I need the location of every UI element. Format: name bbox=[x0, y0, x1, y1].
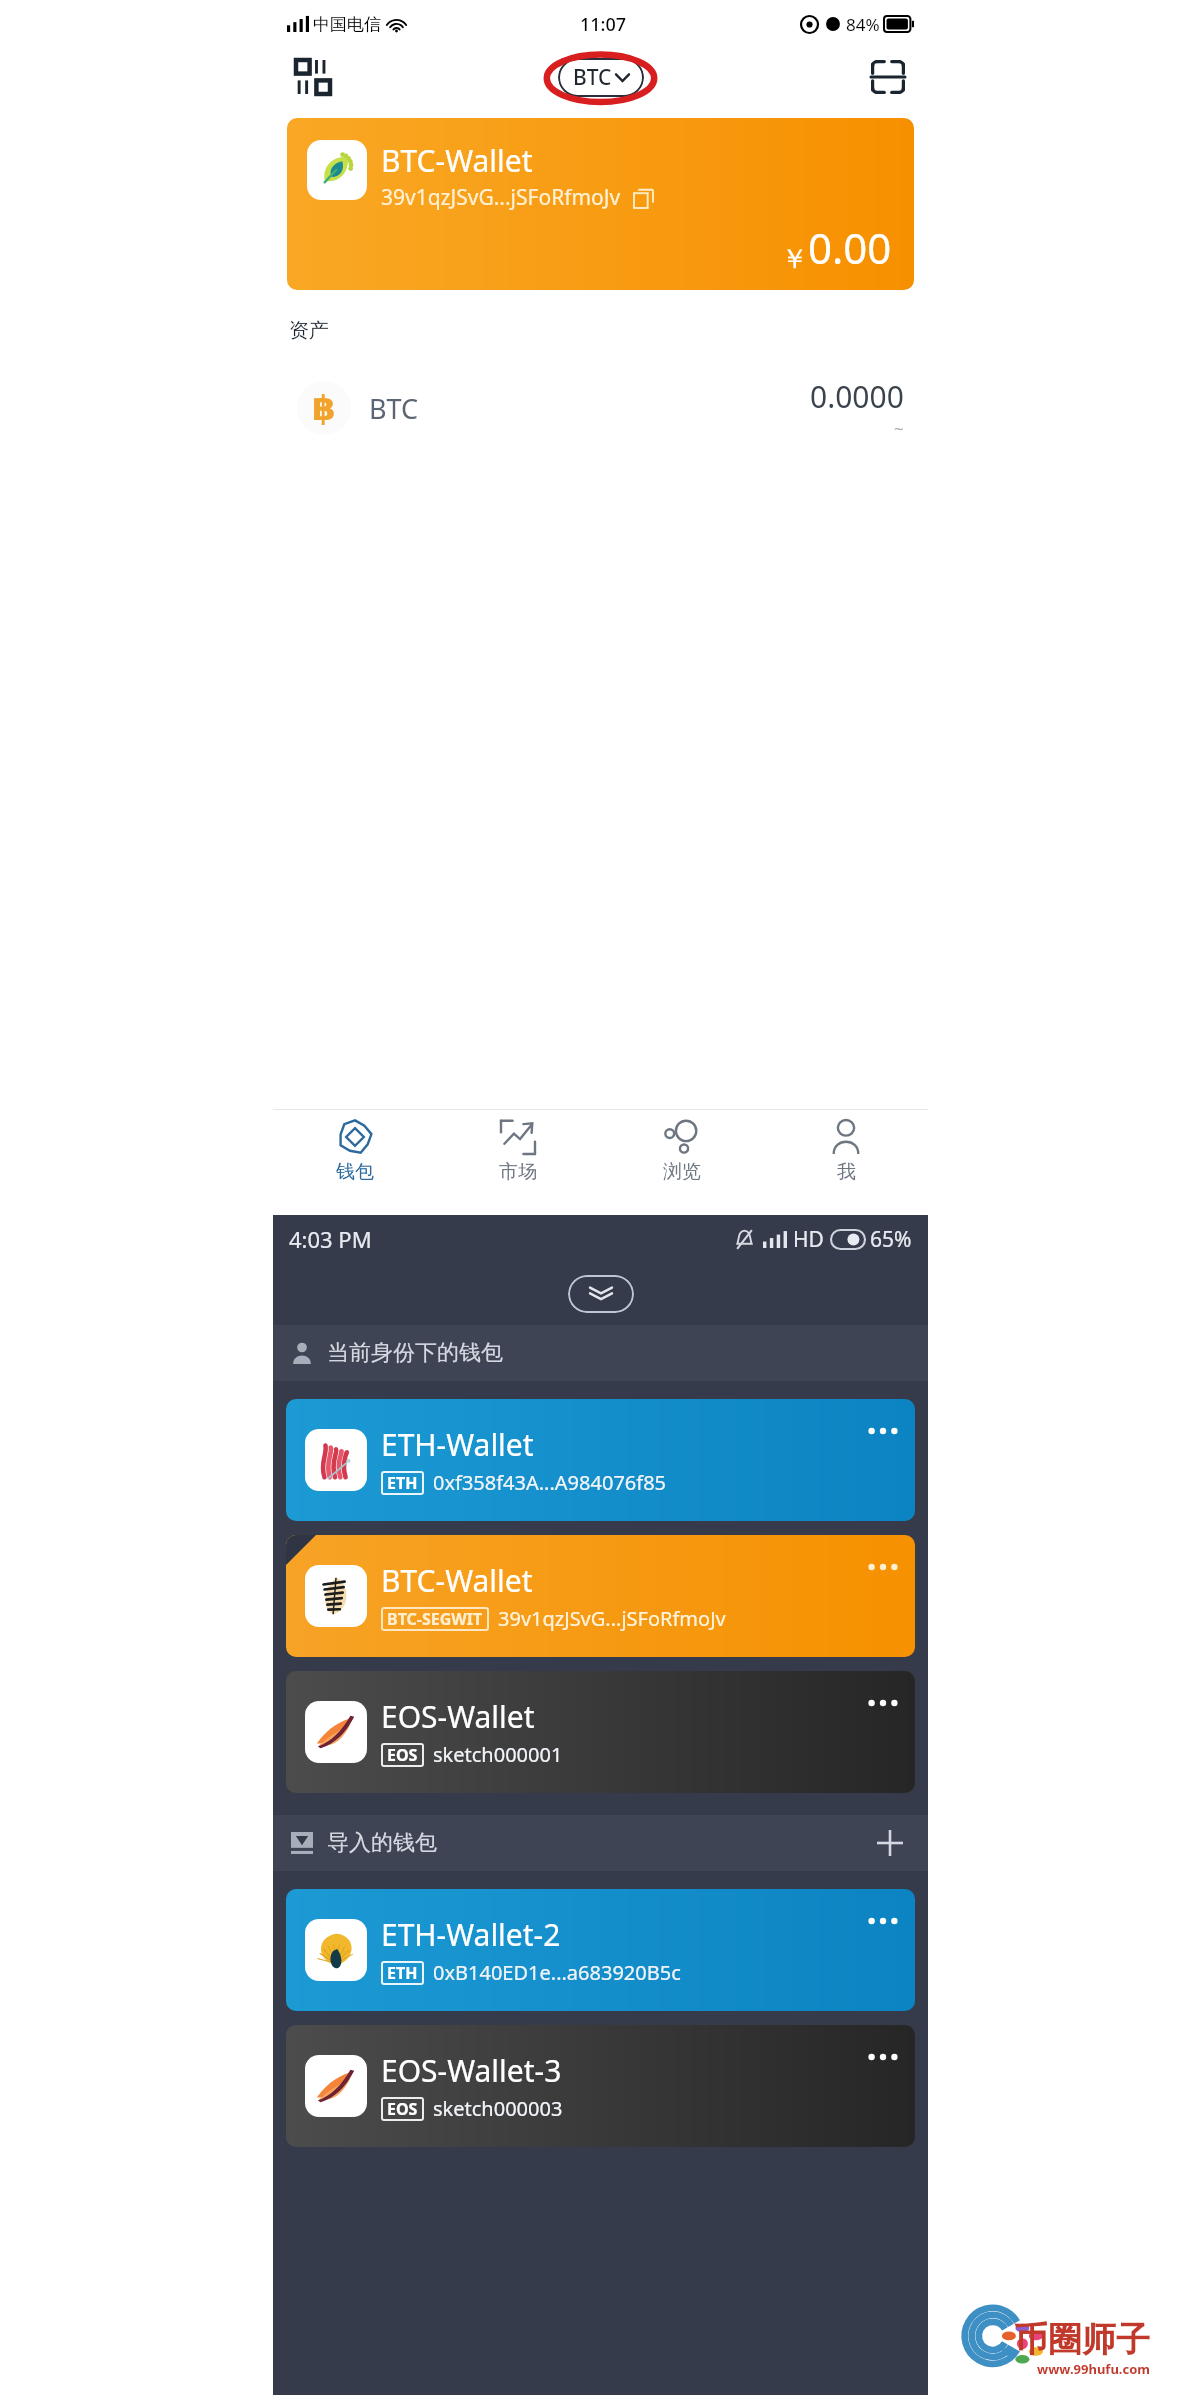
button[interactable]: EOS-Wallet-3 bbox=[286, 2025, 915, 2147]
button[interactable]: More options bbox=[857, 1405, 909, 1457]
staticText: BTC-Wallet bbox=[381, 1560, 533, 1601]
button[interactable]: BTC-Wallet bbox=[287, 118, 914, 290]
staticText: BTC-Wallet bbox=[381, 140, 533, 181]
staticText: 4:03 PM bbox=[289, 1224, 372, 1254]
staticText: 中国电信 bbox=[313, 14, 381, 35]
staticText: ฿ bbox=[312, 388, 336, 428]
staticText: 0xB140ED1e...a683920B5c bbox=[433, 1959, 681, 1986]
staticText: 导入的钱包 bbox=[327, 1829, 437, 1857]
staticText: ~ bbox=[894, 417, 904, 440]
staticText: 资产 bbox=[289, 318, 329, 343]
staticText: 当前身份下的钱包 bbox=[327, 1339, 503, 1367]
button[interactable]: 市场 bbox=[436, 1110, 600, 1194]
staticText: 币圈师子 bbox=[1014, 2318, 1150, 2361]
button[interactable]: 我 bbox=[764, 1110, 928, 1194]
staticText: 65% bbox=[870, 1225, 912, 1254]
button[interactable]: Scan QR code bbox=[860, 49, 916, 105]
button[interactable]: Add wallet bbox=[870, 1823, 910, 1863]
staticText: ETH bbox=[387, 1472, 418, 1494]
button[interactable]: 浏览 bbox=[600, 1110, 764, 1194]
staticText: 0.00 bbox=[808, 219, 892, 276]
button[interactable]: ETH-Wallet-2 bbox=[286, 1889, 915, 2011]
staticText: 我 bbox=[837, 1160, 856, 1184]
staticText: 39v1qzJSvG...jSFoRfmoJv bbox=[498, 1605, 726, 1632]
button[interactable]: BTC bbox=[558, 58, 644, 97]
staticText: 浏览 bbox=[663, 1160, 701, 1184]
staticText: ETH-Wallet bbox=[381, 1424, 534, 1465]
staticText: HD bbox=[793, 1225, 824, 1254]
staticText: EOS bbox=[387, 1744, 418, 1766]
button[interactable]: EOS-Wallet bbox=[286, 1671, 915, 1793]
button[interactable]: Copy address bbox=[630, 185, 656, 211]
staticText: sketch000003 bbox=[433, 2095, 563, 2122]
staticText: BTC bbox=[573, 63, 612, 92]
button[interactable]: 钱包 bbox=[273, 1110, 436, 1194]
staticText: EOS-Wallet-3 bbox=[381, 2050, 562, 2091]
staticText: sketch000001 bbox=[433, 1741, 563, 1768]
staticText: BTC bbox=[369, 390, 419, 427]
staticText: BTC-SEGWIT bbox=[387, 1608, 483, 1630]
staticText: 市场 bbox=[499, 1160, 537, 1184]
button[interactable]: More options bbox=[857, 1895, 909, 1947]
button[interactable]: More options bbox=[857, 1541, 909, 1593]
button[interactable]: Collapse bbox=[568, 1275, 634, 1313]
staticText: ETH bbox=[387, 1962, 418, 1984]
staticText: 39v1qzJSvG...jSFoRfmoJv bbox=[381, 183, 621, 212]
staticText: 0.0000 bbox=[810, 376, 904, 417]
staticText: www.99hufu.com bbox=[1037, 2360, 1150, 2378]
staticText: EOS-Wallet bbox=[381, 1696, 535, 1737]
staticText: 0xf358f43A...A984076f85 bbox=[433, 1469, 667, 1496]
button[interactable]: ฿ bbox=[273, 369, 928, 447]
button[interactable]: BTC-Wallet bbox=[286, 1535, 915, 1657]
staticText: EOS bbox=[387, 2098, 418, 2120]
staticText: 84% bbox=[846, 13, 880, 36]
staticText: ETH-Wallet-2 bbox=[381, 1914, 561, 1955]
staticText: 11:07 bbox=[580, 12, 627, 37]
staticText: ￥ bbox=[781, 242, 808, 276]
button[interactable]: More options bbox=[857, 2031, 909, 2083]
button[interactable]: More options bbox=[857, 1677, 909, 1729]
button[interactable]: Wallet manager bbox=[285, 49, 341, 105]
button[interactable]: ETH-Wallet bbox=[286, 1399, 915, 1521]
staticText: 钱包 bbox=[336, 1160, 374, 1184]
